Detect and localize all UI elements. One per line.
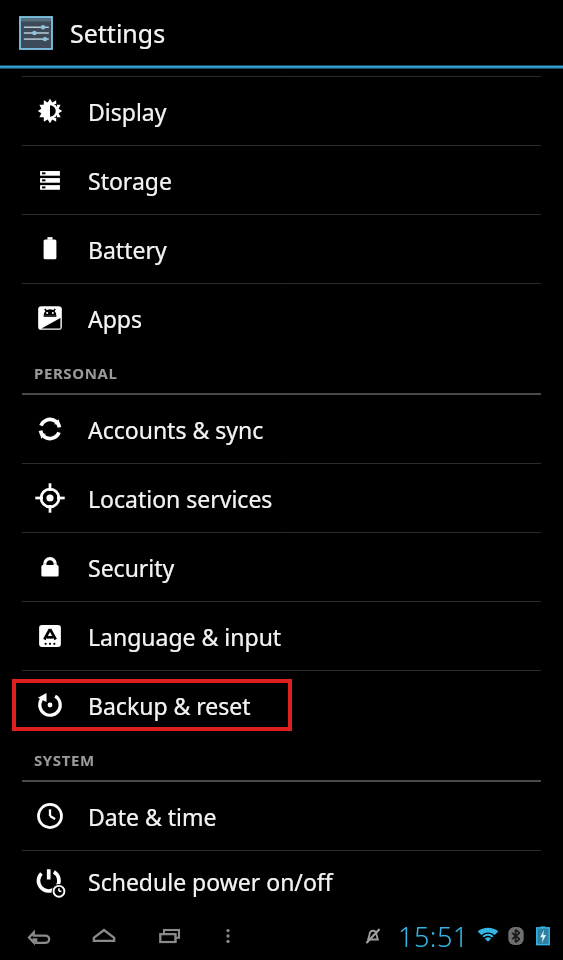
staticText: Storage <box>88 165 172 196</box>
button[interactable]: Back <box>14 914 62 958</box>
button[interactable]: Schedule power on/off <box>0 851 563 912</box>
button[interactable]: Recent apps <box>146 914 194 958</box>
staticText: Location services <box>88 483 273 514</box>
staticText: Security <box>88 552 175 583</box>
staticText: SYSTEM <box>34 750 95 770</box>
staticText: Accounts & sync <box>88 414 264 445</box>
staticText: Schedule power on/off <box>88 866 333 897</box>
button[interactable]: Battery <box>0 215 563 283</box>
staticText: Battery <box>88 234 167 265</box>
button[interactable]: Accounts & sync <box>0 395 563 463</box>
button[interactable]: Silent mode <box>356 919 390 953</box>
button[interactable]: Location services <box>0 464 563 532</box>
button[interactable]: Language & input <box>0 602 563 670</box>
staticText: 15:51 <box>398 918 469 955</box>
staticText: Backup & reset <box>88 690 251 721</box>
button[interactable]: Apps <box>0 284 563 352</box>
staticText: Display <box>88 96 167 127</box>
staticText: Language & input <box>88 621 282 652</box>
button[interactable]: Settings <box>0 0 563 65</box>
staticText: Settings <box>70 16 166 50</box>
button[interactable]: Date & time <box>0 782 563 850</box>
staticText: PERSONAL <box>34 363 118 383</box>
button[interactable]: Home <box>80 914 128 958</box>
button[interactable]: Storage <box>0 146 563 214</box>
button[interactable]: Backup & reset <box>0 671 563 739</box>
staticText: Date & time <box>88 801 217 832</box>
button[interactable]: Security <box>0 533 563 601</box>
staticText: Apps <box>88 303 143 334</box>
button[interactable]: More options <box>204 914 252 958</box>
button[interactable]: Display <box>0 77 563 145</box>
